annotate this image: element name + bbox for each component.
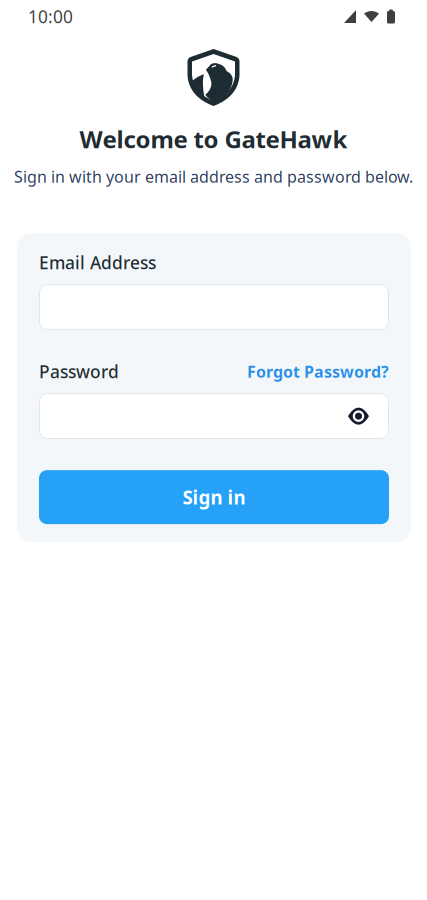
staticText: Sign in [182,485,245,510]
button[interactable]: Show password [39,393,389,439]
staticText: 10:00 [28,5,73,28]
button[interactable]: Sign in [39,470,389,524]
staticText: Welcome to GateHawk [79,123,347,155]
staticText: Email Address [39,251,156,274]
staticText: Password [39,360,119,383]
button[interactable]: Email Address [39,284,389,330]
button[interactable]: Forgot Password? [247,361,389,382]
staticText: Forgot Password? [247,361,389,382]
staticText: Sign in with your email address and pass… [14,166,413,187]
